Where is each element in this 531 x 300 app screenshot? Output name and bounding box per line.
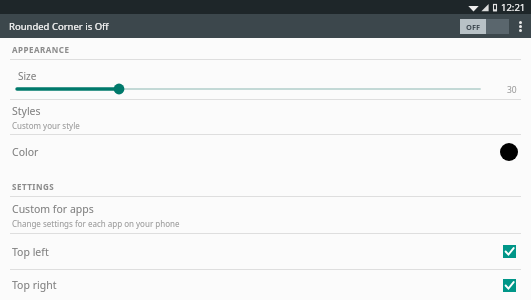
button[interactable]: Top left [0, 234, 531, 269]
staticText: Change settings for each app on your pho… [12, 218, 180, 229]
button[interactable]: More options [509, 14, 531, 38]
staticText: SETTINGS [12, 181, 55, 192]
button[interactable]: Size [0, 60, 531, 99]
staticText: Top left [12, 245, 49, 259]
button[interactable]: Styles [0, 100, 531, 134]
staticText: Size [18, 69, 37, 83]
button[interactable]: Top right [0, 270, 531, 300]
staticText: Top right [12, 278, 57, 292]
staticText: 30 [507, 84, 517, 96]
button[interactable]: Color [0, 135, 531, 168]
staticText: 12:21 [501, 1, 526, 14]
button[interactable]: Custom for apps [0, 197, 531, 233]
button[interactable]: Rounded corner switch, off [460, 19, 509, 34]
staticText: Custom for apps [12, 202, 94, 216]
staticText: APPEARANCE [12, 44, 70, 55]
staticText: Styles [12, 104, 41, 118]
staticText: OFF [466, 22, 481, 32]
staticText: Color [12, 145, 39, 159]
staticText: Custom your style [12, 120, 80, 131]
staticText: Rounded Corner is Off [9, 20, 109, 33]
